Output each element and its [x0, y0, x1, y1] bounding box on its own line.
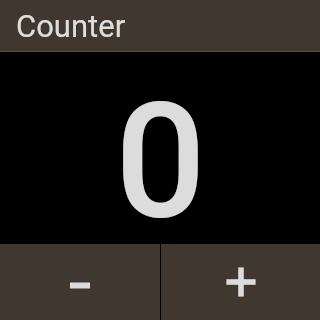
button[interactable]: Increase counter: [161, 244, 320, 320]
button[interactable]: Decrease counter: [0, 244, 160, 320]
staticText: Counter: [16, 8, 126, 44]
staticText: 0: [115, 68, 206, 256]
